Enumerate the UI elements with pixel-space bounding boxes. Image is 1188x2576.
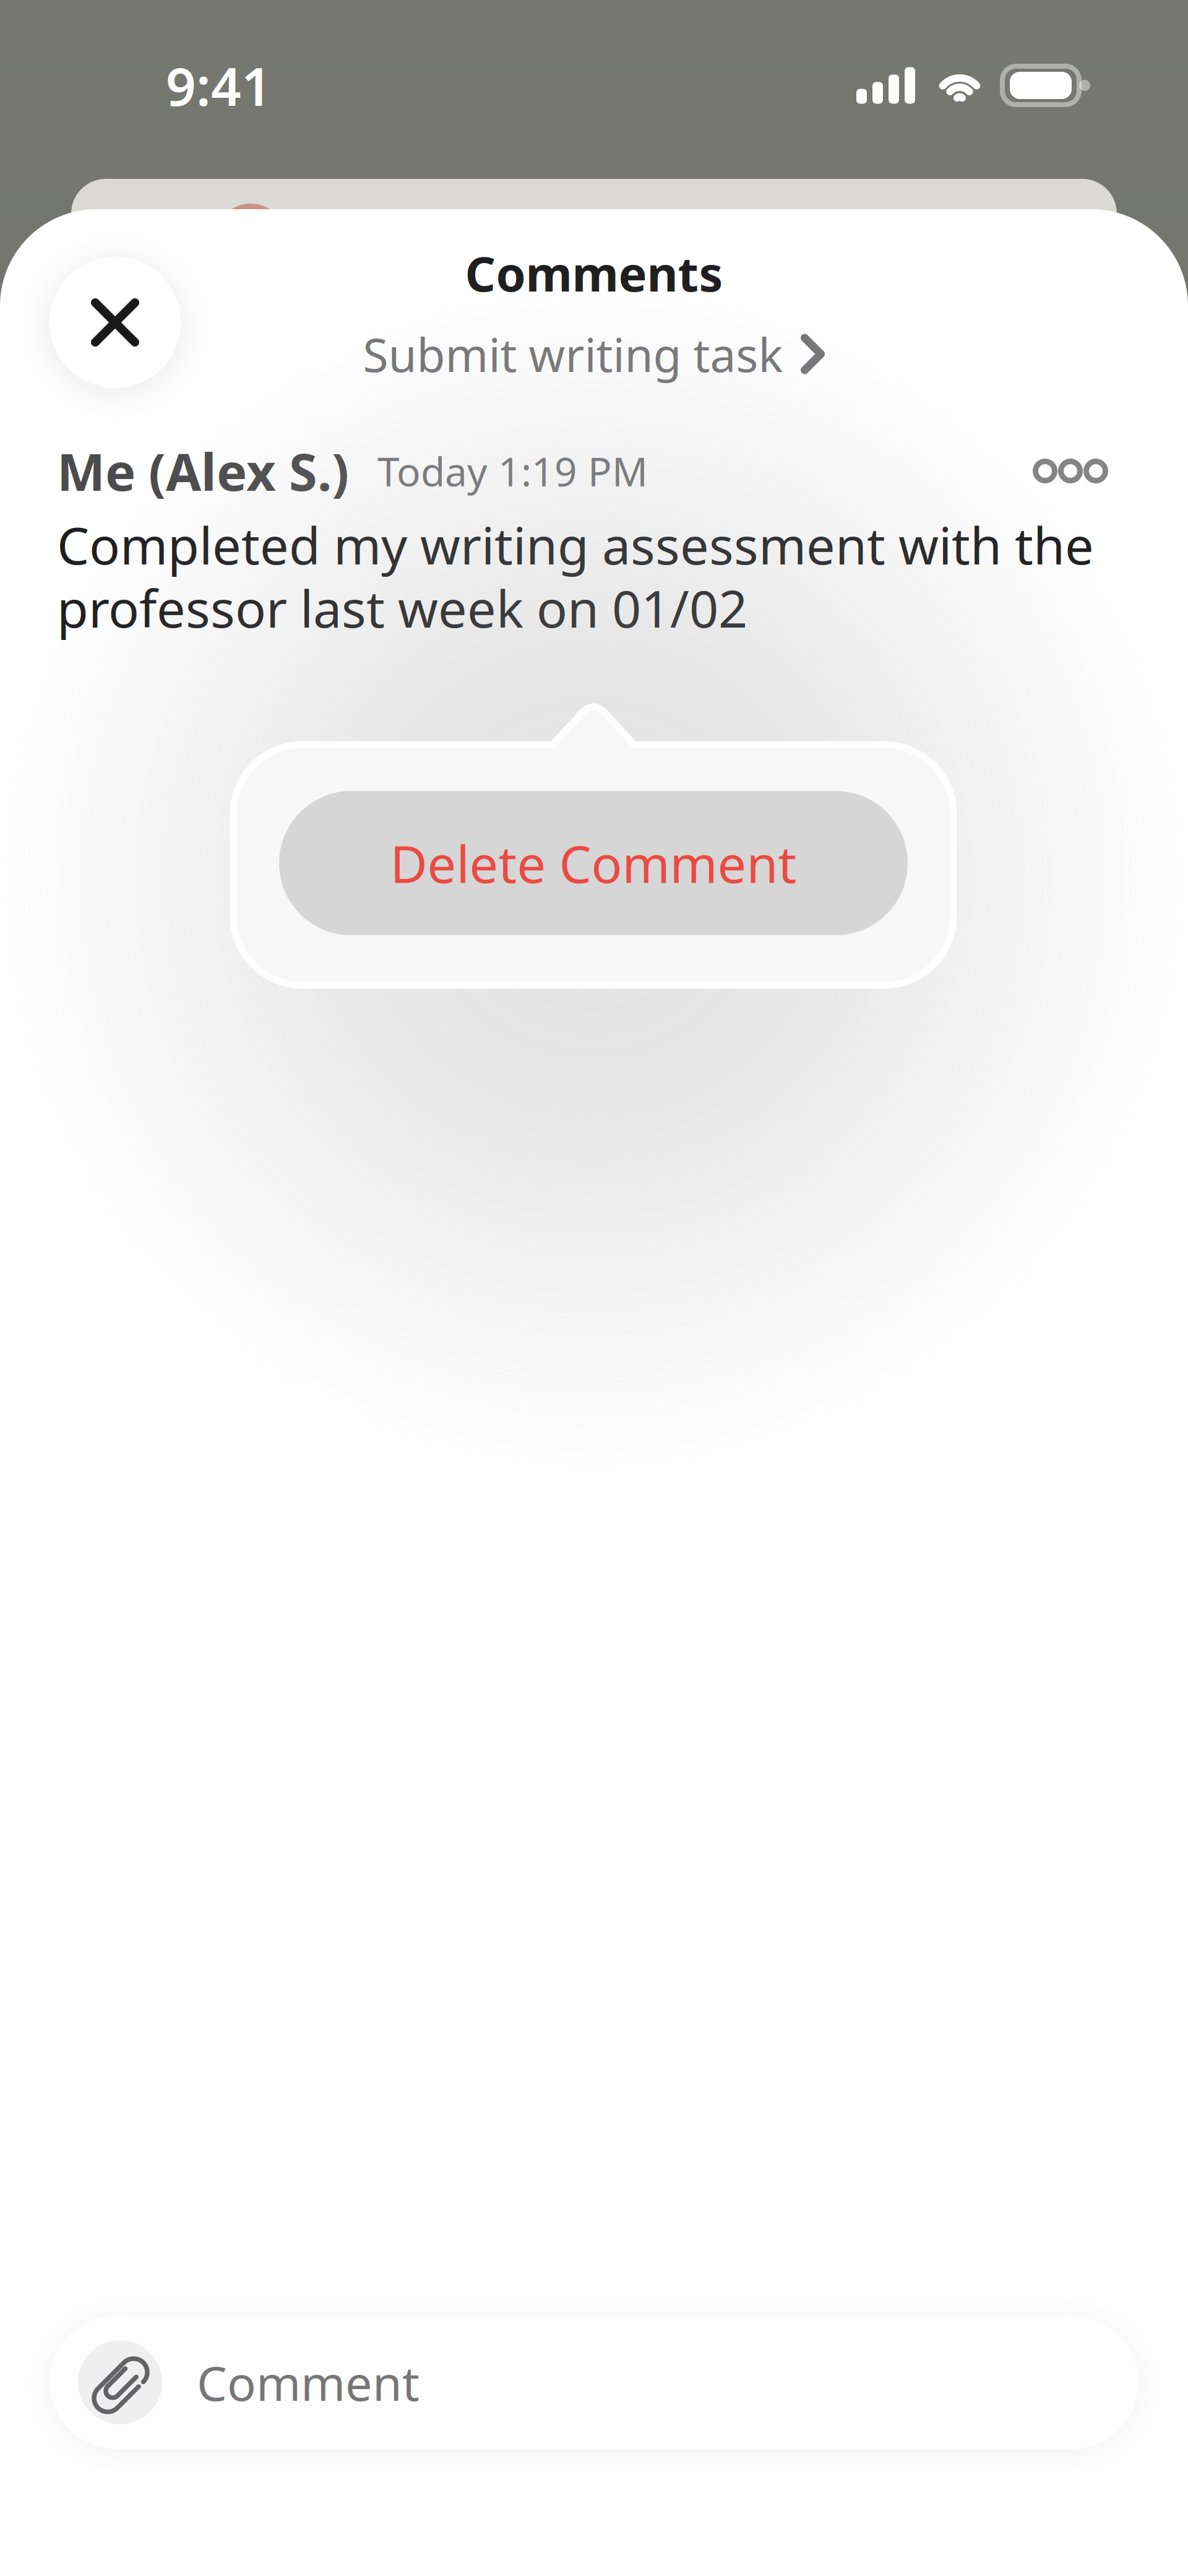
staticText: Completed my writing assessment with the: [57, 511, 1094, 579]
staticText: Comments: [465, 241, 723, 305]
staticText: Me (Alex S.): [57, 437, 349, 505]
staticText: Comment: [197, 2351, 420, 2414]
staticText: professor last week on 01/02: [57, 574, 747, 642]
button[interactable]: Submit writing task: [0, 324, 1188, 384]
button[interactable]: More options: [1015, 444, 1126, 498]
button[interactable]: Delete Comment: [279, 791, 908, 935]
button[interactable]: Close: [49, 257, 181, 388]
staticText: Submit writing task: [363, 323, 783, 385]
staticText: 9:41: [166, 50, 272, 120]
staticText: Today 1:19 PM: [377, 445, 648, 497]
button[interactable]: Comment: [49, 2315, 1138, 2449]
staticText: Delete Comment: [390, 829, 797, 897]
